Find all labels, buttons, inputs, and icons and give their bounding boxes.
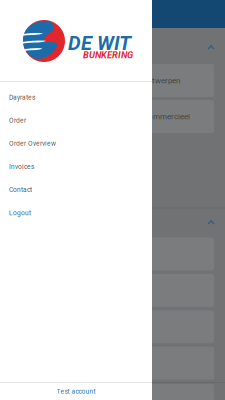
button[interactable]: Order [0,109,152,132]
staticText: BUNKERING [83,49,133,60]
staticText: Commercieel [143,112,190,121]
button[interactable]: Logout [0,201,152,224]
staticText: Logout [9,209,31,217]
staticText: Contact [9,186,32,194]
staticText: Antwerpen [143,76,180,85]
button[interactable]: Collapse section [202,214,220,230]
staticText: Invoices [9,163,34,170]
button[interactable]: Order Overview [0,132,152,155]
staticText: Order Overview [9,140,56,147]
button[interactable]: Dayrates [0,86,152,109]
staticText: Test account [56,388,95,395]
staticText: Dayrates [9,93,35,101]
button[interactable]: Invoices [0,155,152,178]
staticText: Order [9,116,26,124]
staticText: DE WIT [68,31,131,55]
button[interactable]: Collapse section [202,39,220,55]
button[interactable]: Contact [0,178,152,201]
button[interactable]: Test account [0,383,152,400]
